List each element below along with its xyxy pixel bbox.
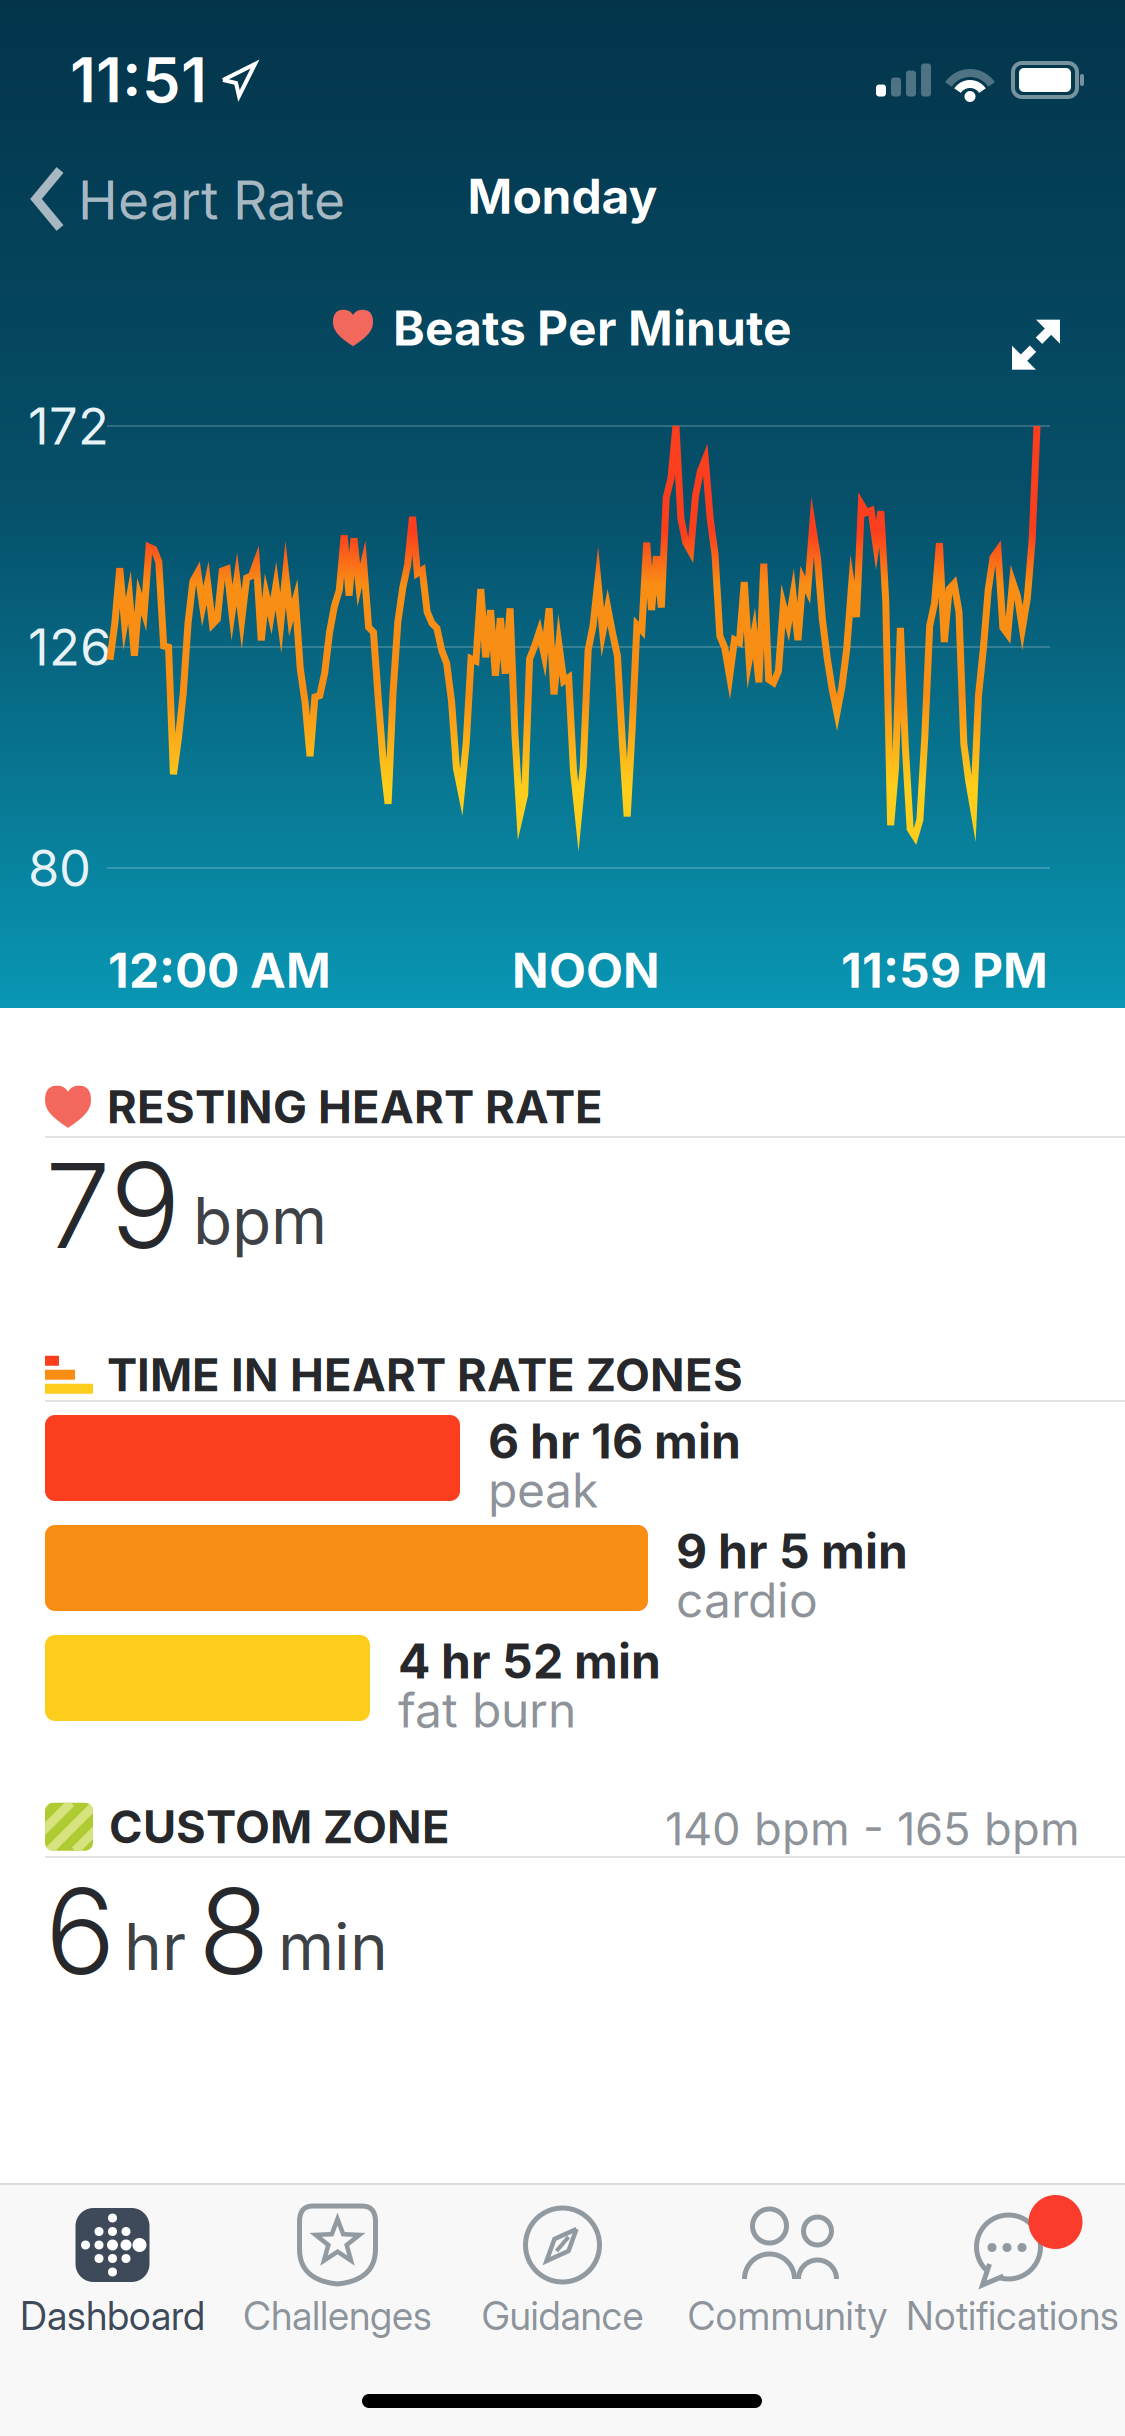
staticText: 6: [45, 1862, 116, 2000]
button[interactable]: Expand chart: [1012, 320, 1060, 370]
button[interactable]: Dashboard: [0, 2205, 225, 2339]
staticText: 126: [28, 617, 111, 677]
staticText: 11:59 PM: [841, 942, 1048, 999]
staticText: TIME IN HEART RATE ZONES: [107, 1348, 743, 1401]
staticText: 11:51: [70, 44, 207, 116]
button[interactable]: Challenges: [225, 2205, 450, 2339]
staticText: 12:00 AM: [108, 942, 331, 999]
staticText: Guidance: [481, 2293, 643, 2339]
staticText: peak: [488, 1462, 598, 1518]
staticText: Challenges: [243, 2293, 432, 2339]
staticText: 172: [28, 396, 109, 456]
staticText: Monday: [467, 168, 657, 225]
staticText: min: [278, 1909, 388, 1984]
button[interactable]: Notifications: [900, 2205, 1125, 2339]
staticText: RESTING HEART RATE: [107, 1080, 603, 1133]
staticText: Notifications: [906, 2293, 1119, 2339]
staticText: bpm: [193, 1183, 327, 1258]
button[interactable]: Guidance: [450, 2205, 675, 2339]
staticText: 9 hr 5 min: [676, 1523, 908, 1579]
staticText: 6 hr 16 min: [488, 1413, 741, 1469]
staticText: NOON: [512, 942, 660, 999]
staticText: cardio: [676, 1572, 818, 1628]
staticText: hr: [124, 1909, 186, 1984]
staticText: Community: [687, 2293, 887, 2339]
staticText: 140 bpm - 165 bpm: [665, 1802, 1080, 1855]
staticText: 4 hr 52 min: [398, 1633, 661, 1689]
staticText: 8: [198, 1862, 270, 2000]
staticText: 80: [28, 838, 91, 898]
staticText: CUSTOM ZONE: [109, 1800, 450, 1853]
staticText: Beats Per Minute: [393, 300, 792, 356]
staticText: 79: [45, 1136, 181, 1274]
staticText: Dashboard: [20, 2293, 205, 2339]
button[interactable]: Community: [675, 2205, 900, 2339]
button[interactable]: Back: [0, 168, 345, 232]
staticText: fat burn: [398, 1682, 576, 1738]
staticText: Heart Rate: [78, 168, 345, 231]
